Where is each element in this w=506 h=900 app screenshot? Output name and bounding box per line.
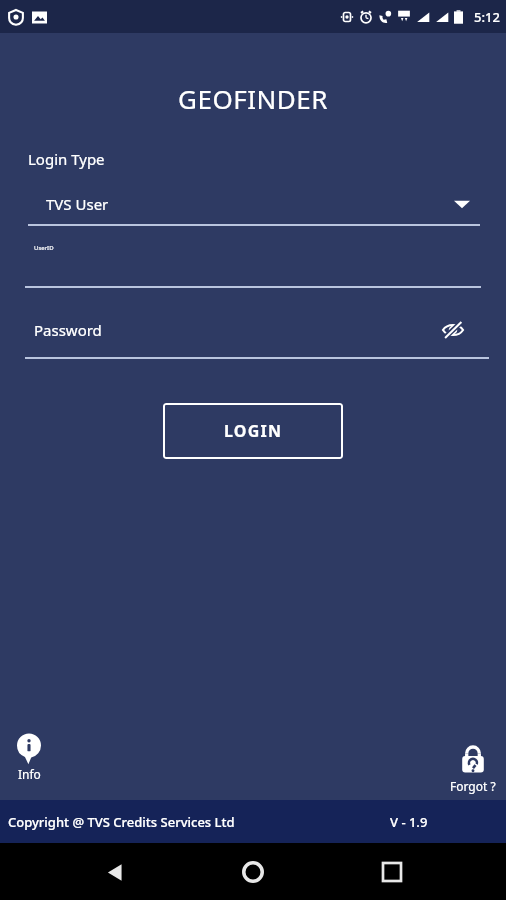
button[interactable]: Home [229, 848, 277, 896]
button[interactable]: Show password [438, 315, 468, 345]
button[interactable]: Info [12, 731, 46, 782]
button[interactable]: LOGIN [163, 403, 343, 459]
staticText: TVS User [46, 194, 454, 214]
button[interactable]: Password [0, 315, 506, 359]
button[interactable]: Recents [368, 848, 416, 896]
staticText: Copyright @ TVS Credits Services Ltd [8, 813, 235, 831]
staticText: 5:12 [474, 8, 500, 26]
staticText: LOGIN [224, 420, 283, 442]
staticText: Password [34, 320, 438, 340]
staticText: V - 1.9 [390, 813, 428, 831]
staticText: UserID [34, 244, 54, 252]
staticText: Info [18, 766, 41, 782]
staticText: Login Type [28, 149, 105, 169]
button[interactable]: Forgot ? [450, 741, 496, 794]
button[interactable]: Back [91, 848, 139, 896]
staticText: GEOFINDER [0, 81, 506, 116]
button[interactable]: UserID [0, 244, 506, 288]
button[interactable]: TVS User [0, 190, 506, 226]
staticText: Forgot ? [450, 778, 496, 794]
